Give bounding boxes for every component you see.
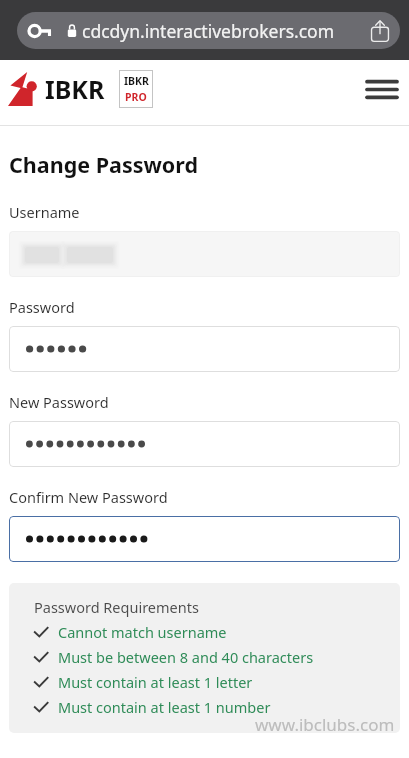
staticText: Password	[9, 297, 75, 317]
button[interactable]: Share	[365, 16, 395, 46]
staticText: www.ibclubs.com	[255, 713, 395, 736]
staticText: IBKR	[124, 74, 149, 88]
staticText: IBKR	[45, 72, 105, 106]
button[interactable]	[9, 516, 400, 562]
staticText: Username	[9, 202, 80, 222]
button[interactable]	[9, 231, 400, 277]
staticText: Must contain at least 1 number	[58, 697, 271, 717]
button[interactable]: Menu	[360, 67, 404, 111]
staticText: Confirm New Password	[9, 487, 168, 507]
button[interactable]	[9, 421, 400, 467]
staticText: PRO	[125, 90, 147, 104]
staticText: Password Requirements	[34, 597, 199, 617]
staticText: cdcdyn.interactivebrokers.com	[82, 19, 335, 43]
staticText: Must contain at least 1 letter	[58, 672, 253, 692]
staticText: Must be between 8 and 40 characters	[58, 647, 314, 667]
button[interactable]	[9, 326, 400, 372]
button[interactable]: cdcdyn.interactivebrokers.com	[17, 12, 400, 49]
staticText: New Password	[9, 392, 109, 412]
staticText: Change Password	[9, 150, 199, 179]
staticText: Cannot match username	[58, 622, 227, 642]
